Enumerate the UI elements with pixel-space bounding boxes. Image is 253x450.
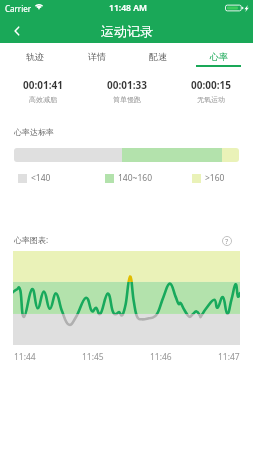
staticText: 11:46 [150, 351, 172, 363]
staticText: 140~160 [118, 172, 153, 184]
button[interactable]: 配速 [127, 43, 188, 70]
staticText: 11:48 AM [109, 2, 148, 14]
staticText: 轨迹 [26, 51, 44, 62]
button[interactable]: Back [0, 19, 34, 43]
staticText: 无氧运动 [197, 95, 225, 104]
staticText: ? [225, 236, 229, 246]
staticText: >160 [205, 172, 225, 184]
staticText: 高效减脂 [29, 95, 57, 104]
staticText: 00:00:15 [191, 78, 231, 92]
staticText: 11:47 [218, 351, 240, 363]
staticText: <140 [31, 172, 51, 184]
staticText: 配速 [149, 51, 167, 62]
staticText: 00:01:33 [107, 78, 147, 92]
staticText: 11:44 [14, 351, 36, 363]
staticText: 详情 [88, 51, 106, 62]
button[interactable]: 轨迹 [4, 43, 66, 70]
button[interactable]: Help [220, 234, 233, 247]
staticText: 11:45 [82, 351, 104, 363]
staticText: 心率 [210, 51, 228, 62]
button[interactable]: 详情 [66, 43, 127, 70]
staticText: 心率达标率 [14, 127, 54, 137]
staticText: Carrier [5, 3, 32, 14]
staticText: 00:01:41 [23, 78, 63, 92]
staticText: 运动记录 [101, 23, 153, 39]
staticText: 简单慢跑 [113, 95, 141, 104]
button[interactable]: 心率 [188, 43, 249, 70]
staticText: 心率图表: [14, 234, 49, 245]
